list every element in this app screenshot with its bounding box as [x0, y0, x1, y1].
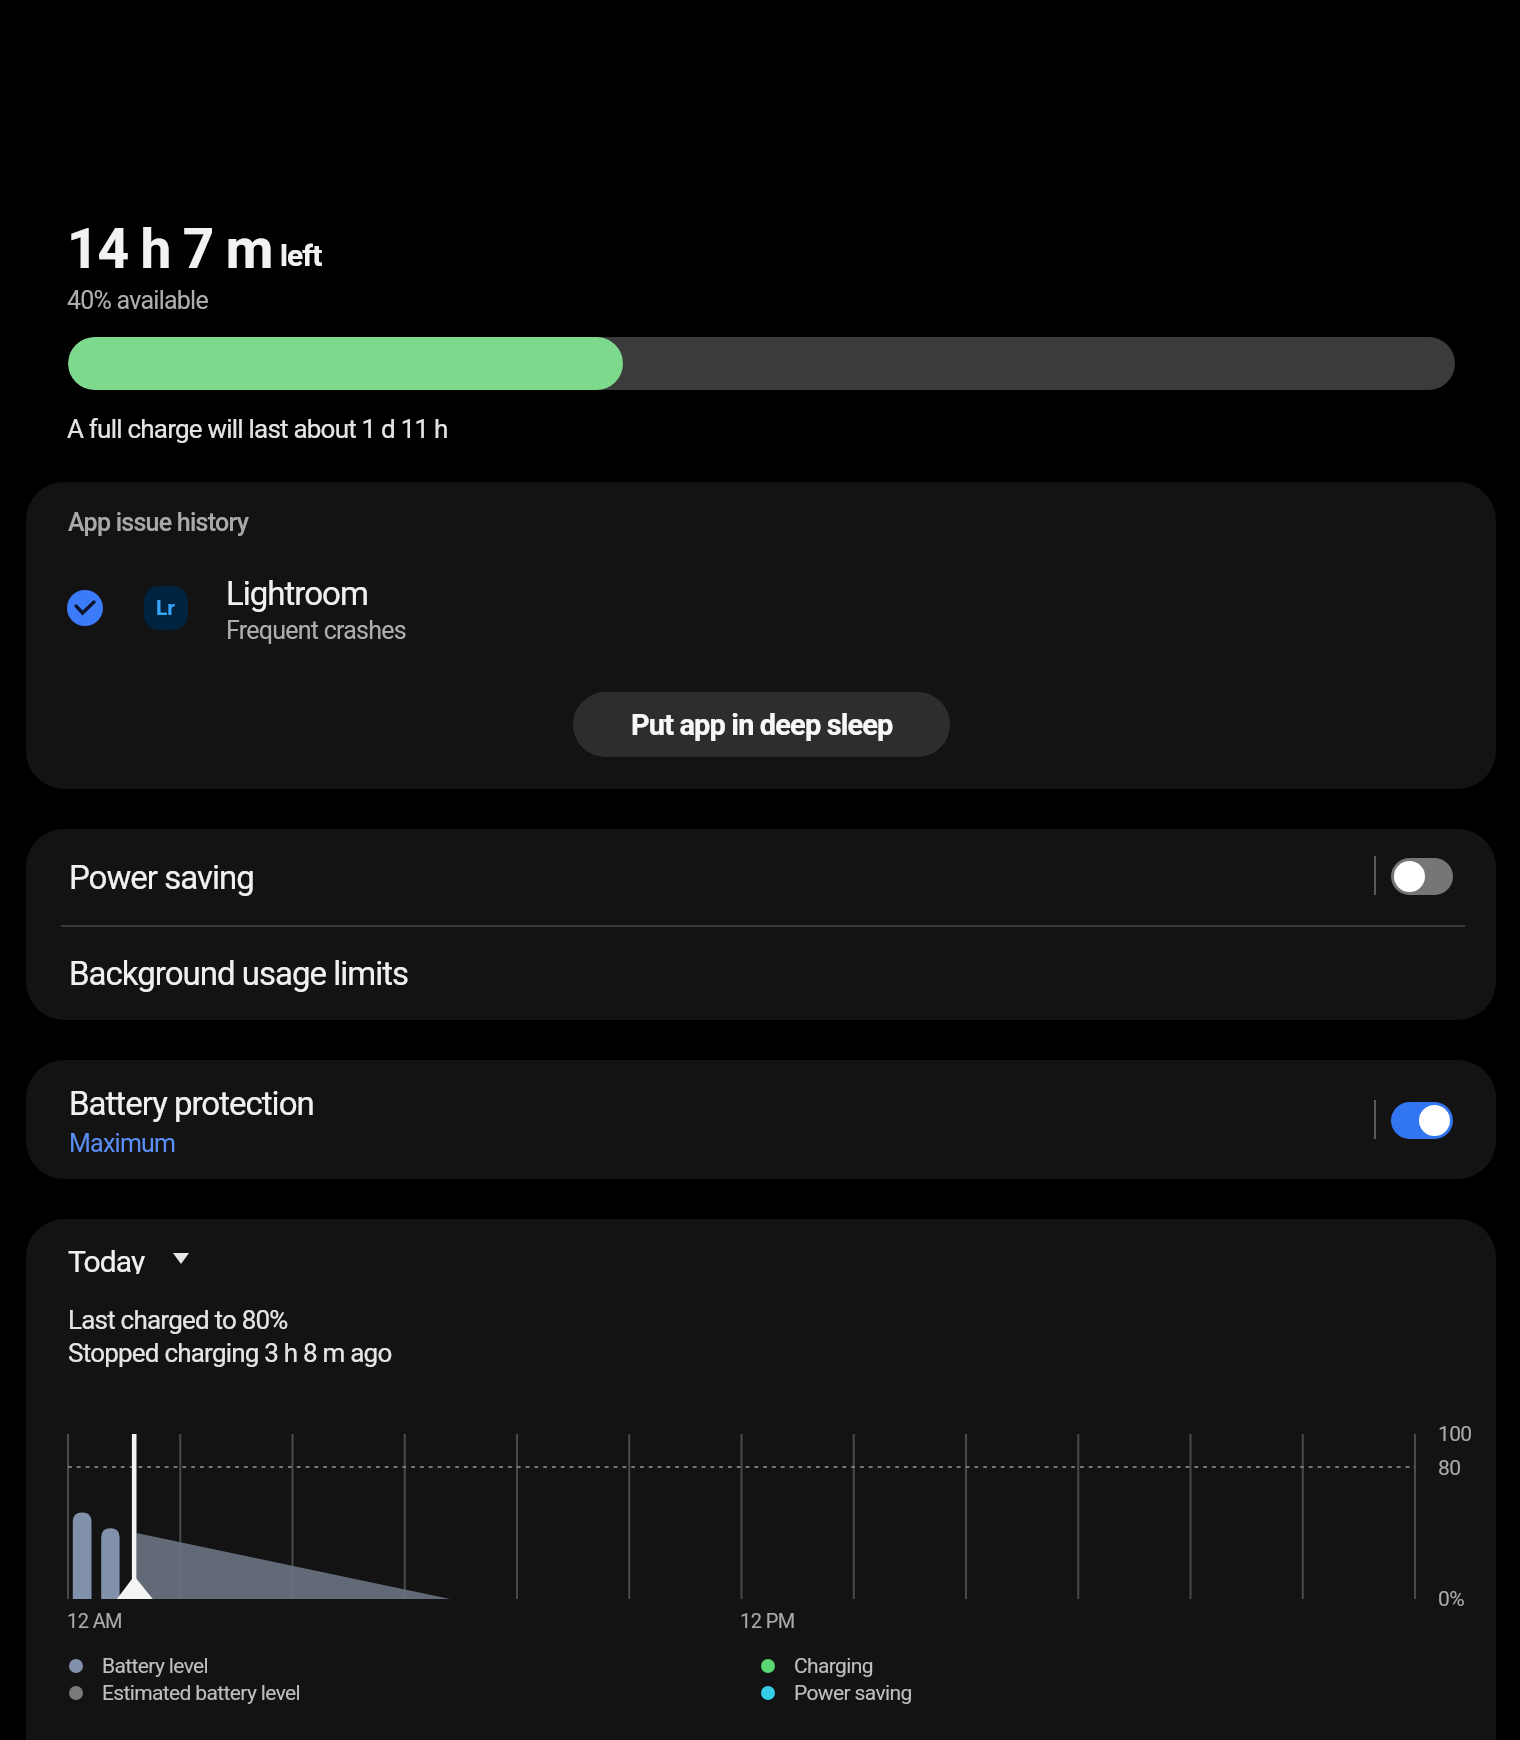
- button[interactable]: Power saving toggle: [1391, 858, 1453, 895]
- button[interactable]: Selected app: [67, 590, 103, 626]
- button[interactable]: Power saving: [26, 829, 1496, 925]
- staticText: 100: [1438, 1422, 1472, 1447]
- staticText: 12 PM: [740, 1609, 795, 1632]
- staticText: 14 h 7 m: [67, 217, 273, 281]
- staticText: 12 AM: [67, 1609, 122, 1632]
- staticText: App issue history: [68, 508, 249, 537]
- staticText: A full charge will last about 1 d 11 h: [67, 414, 448, 444]
- staticText: Background usage limits: [69, 954, 409, 993]
- staticText: Maximum: [69, 1129, 176, 1158]
- staticText: Power saving: [69, 858, 254, 897]
- button[interactable]: Put app in deep sleep: [573, 692, 950, 757]
- staticText: Lr: [156, 596, 176, 621]
- button[interactable]: Today, change period: [68, 1244, 189, 1274]
- staticText: Battery protection: [69, 1084, 314, 1123]
- button[interactable]: Battery protection: [26, 1060, 1496, 1179]
- staticText: Frequent crashes: [226, 616, 406, 645]
- staticText: Estimated battery level: [102, 1681, 301, 1706]
- staticText: 80: [1438, 1456, 1461, 1481]
- button[interactable]: Battery protection toggle: [1391, 1102, 1453, 1139]
- staticText: Stopped charging 3 h 8 m ago: [68, 1338, 392, 1368]
- button[interactable]: Background usage limits: [26, 927, 1496, 1020]
- staticText: Battery level: [102, 1654, 209, 1679]
- staticText: 0%: [1438, 1587, 1464, 1612]
- staticText: Charging: [794, 1654, 873, 1679]
- staticText: Today: [68, 1244, 145, 1274]
- staticText: left: [280, 238, 322, 273]
- staticText: 40% available: [67, 286, 208, 315]
- staticText: Put app in deep sleep: [631, 708, 893, 742]
- staticText: Lightroom: [226, 574, 368, 613]
- staticText: Power saving: [794, 1681, 912, 1706]
- staticText: Last charged to 80%: [68, 1305, 288, 1335]
